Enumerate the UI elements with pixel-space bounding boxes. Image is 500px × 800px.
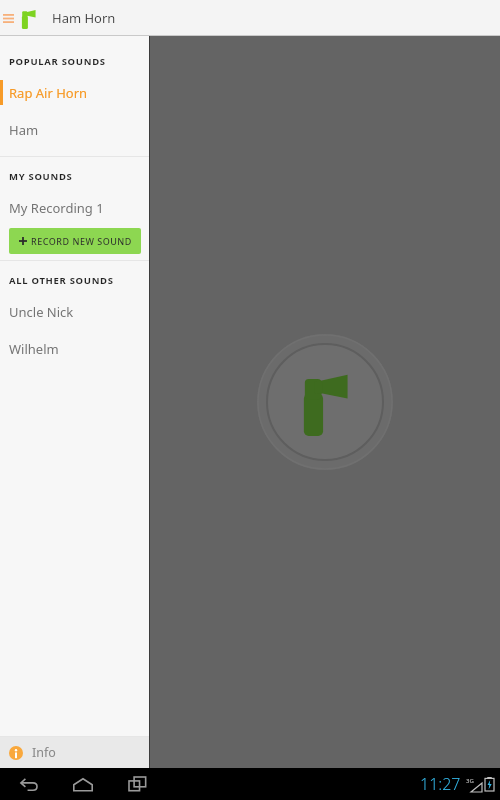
staticText: ALL OTHER SOUNDS [9, 274, 114, 287]
staticText: 3G [466, 777, 474, 785]
button[interactable]: Uncle Nick [0, 293, 150, 330]
button[interactable]: My Recording 1 [0, 189, 150, 226]
button[interactable]: Open navigation drawer [0, 0, 16, 36]
button[interactable]: Back [8, 768, 50, 800]
staticText: Info [32, 744, 56, 761]
button[interactable]: Ham [0, 111, 150, 148]
staticText: Wilhelm [9, 340, 59, 358]
staticText: POPULAR SOUNDS [9, 55, 106, 68]
staticText: My Recording 1 [9, 199, 104, 217]
button[interactable]: RECORD NEW SOUND [9, 228, 141, 254]
button[interactable]: Wilhelm [0, 330, 150, 367]
button[interactable]: Recent apps [116, 768, 158, 800]
button[interactable]: Home [62, 768, 104, 800]
button[interactable]: Rap Air Horn [0, 74, 150, 111]
staticText: MY SOUNDS [9, 170, 73, 183]
staticText: RECORD NEW SOUND [31, 235, 132, 247]
staticText: Uncle Nick [9, 303, 74, 321]
staticText: Ham Horn [52, 9, 116, 27]
staticText: Rap Air Horn [9, 84, 88, 102]
button[interactable]: Play sound [150, 36, 500, 768]
staticText: 11:27 [420, 773, 461, 795]
button[interactable]: Info [0, 737, 150, 768]
staticText: Ham [9, 121, 39, 139]
